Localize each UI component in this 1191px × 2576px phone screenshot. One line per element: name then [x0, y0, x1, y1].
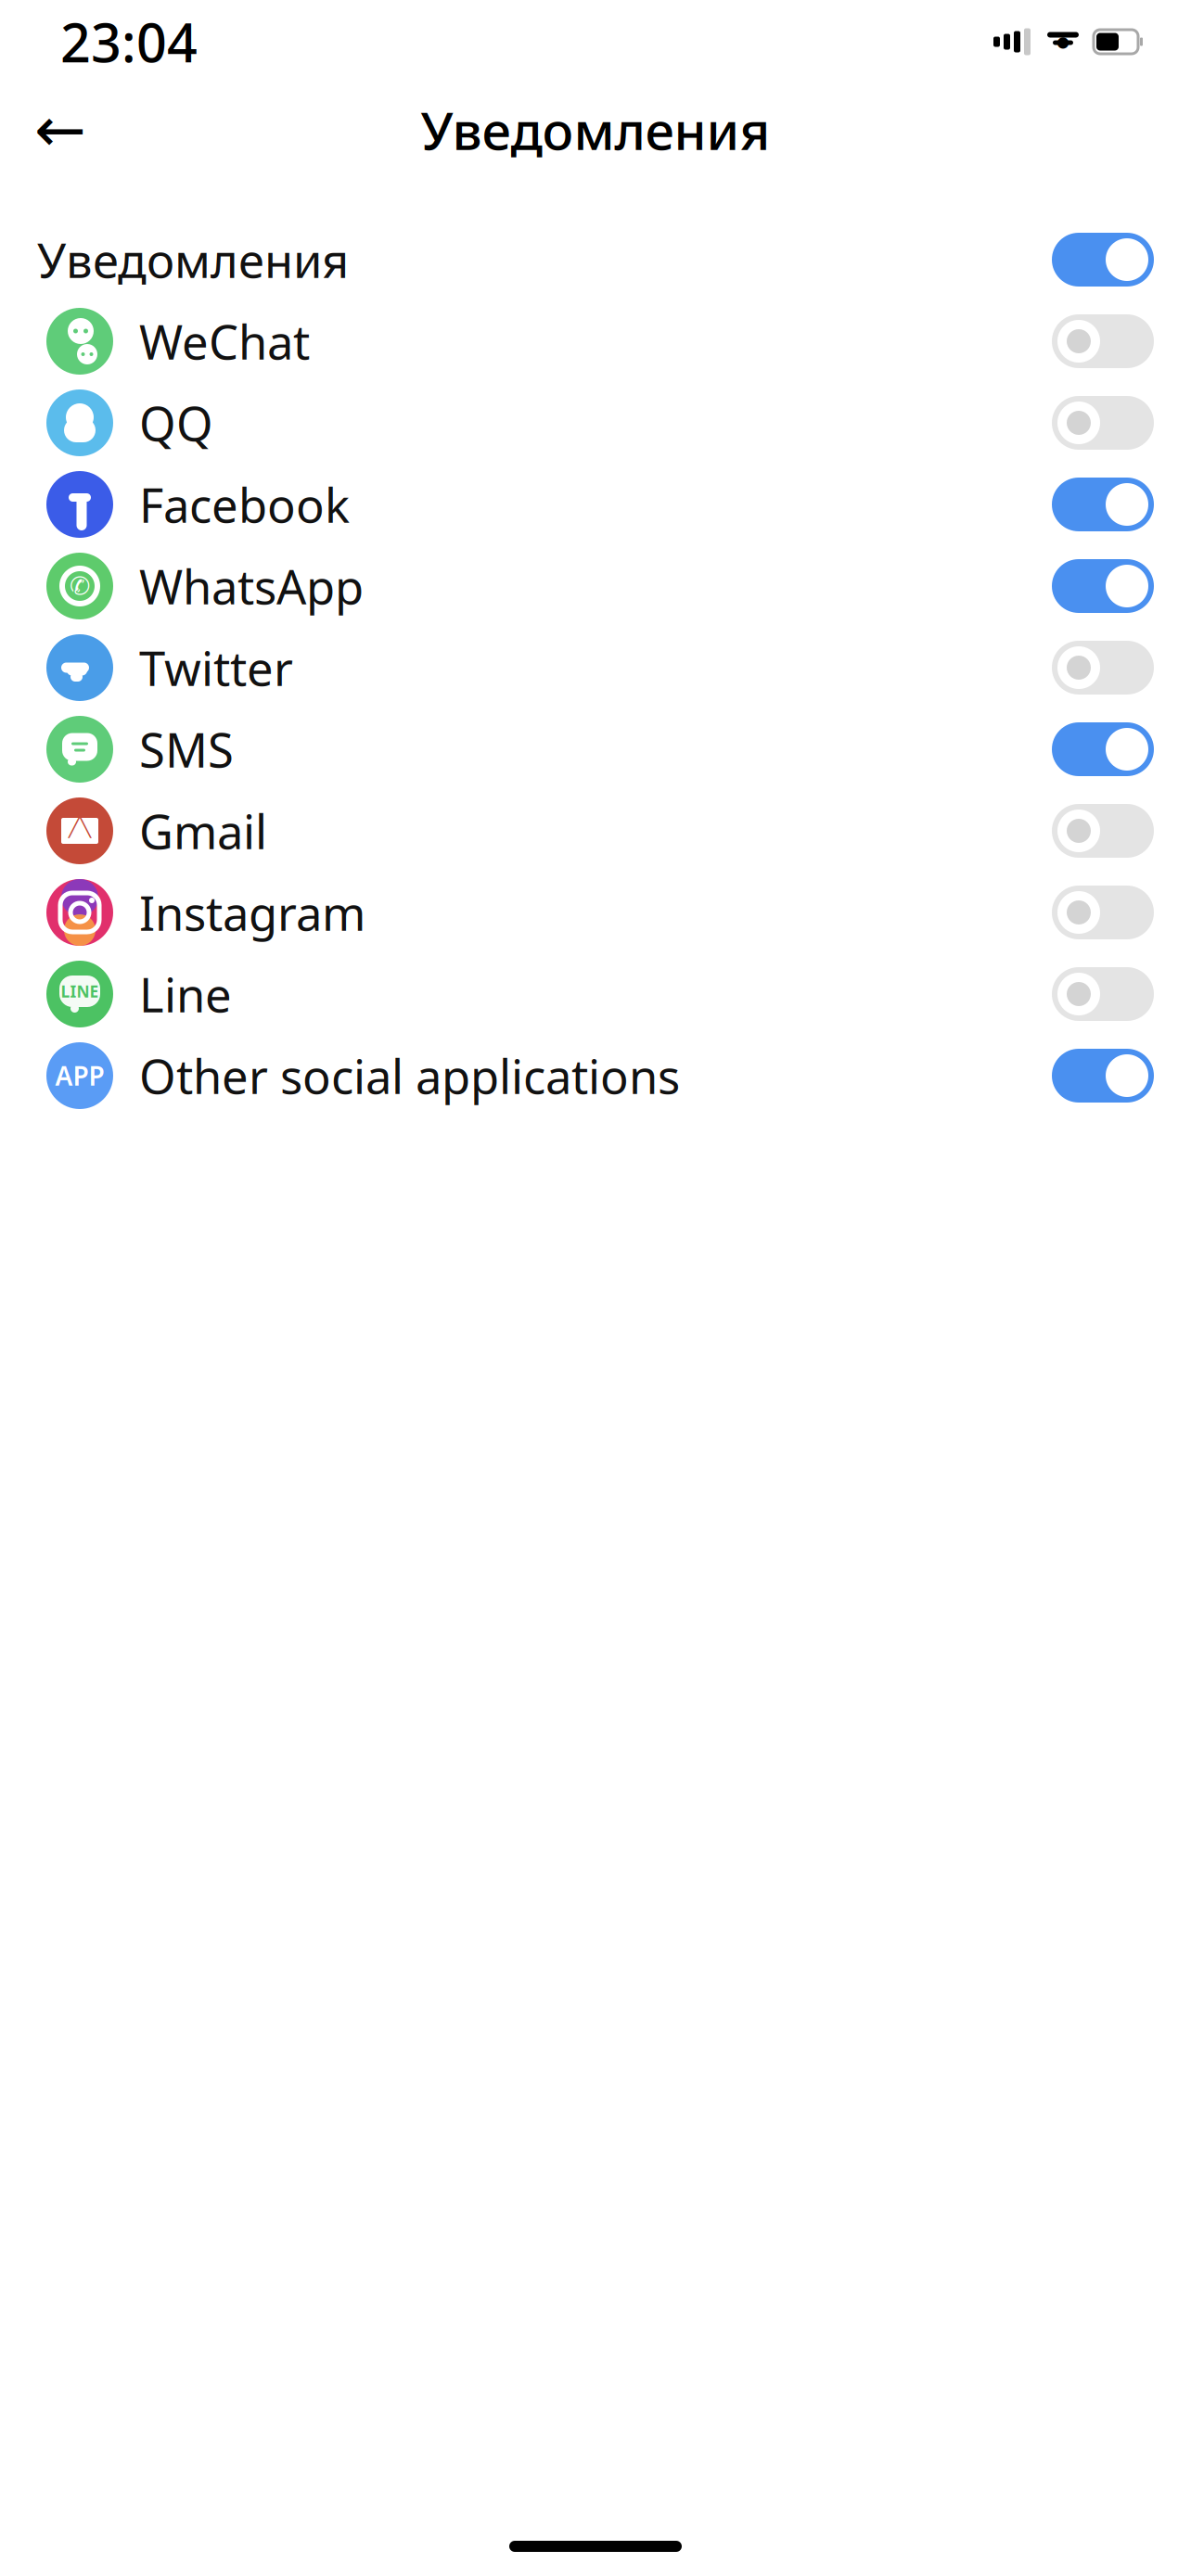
staticText: Facebook [139, 473, 350, 536]
staticText: Уведомления [421, 95, 770, 164]
staticText: WhatsApp [139, 555, 364, 617]
staticText: ● [1057, 33, 1069, 50]
staticText: APP [55, 1058, 104, 1093]
staticText: SMS [139, 718, 234, 780]
button[interactable]: SMS [0, 708, 1191, 790]
button[interactable]: Facebook [0, 464, 1191, 545]
button[interactable]: ✆ [0, 545, 1191, 627]
staticText: Уведомления [37, 228, 349, 291]
button[interactable]: Instagram [0, 872, 1191, 953]
staticText: Twitter [139, 636, 293, 699]
staticText: LINE [61, 981, 99, 1002]
staticText: ✆ [70, 572, 90, 600]
staticText: QQ [139, 392, 213, 454]
button[interactable]: WeChat [0, 300, 1191, 382]
button[interactable]: Twitter [0, 627, 1191, 708]
button[interactable]: Back [19, 88, 102, 172]
staticText: ╱╲ [69, 817, 91, 838]
staticText: Gmail [139, 800, 267, 862]
button[interactable]: QQ [0, 382, 1191, 464]
button[interactable]: APP [0, 1035, 1191, 1116]
staticText: 23:04 [60, 6, 198, 77]
staticText: WeChat [139, 310, 310, 372]
staticText: ← [34, 95, 86, 165]
button[interactable]: ╱╲ [0, 790, 1191, 872]
staticText: Line [139, 963, 232, 1025]
button[interactable]: LINE [0, 953, 1191, 1035]
button[interactable]: Уведомления [0, 219, 1191, 300]
staticText: Instagram [139, 881, 365, 944]
staticText: Other social applications [139, 1044, 680, 1107]
